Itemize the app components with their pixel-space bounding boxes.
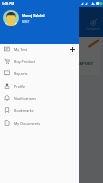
button[interactable]: Add test bbox=[69, 46, 76, 53]
button[interactable]: Profile bbox=[0, 80, 79, 92]
staticText: Reports bbox=[14, 71, 28, 76]
button[interactable]: Notifications bbox=[0, 92, 79, 104]
staticText: Manoj Kakdal bbox=[22, 13, 45, 17]
staticText: Bookmarks bbox=[14, 108, 34, 113]
staticText: Notifications bbox=[14, 96, 36, 101]
staticText: NEET bbox=[22, 20, 30, 24]
staticText: My Test bbox=[14, 47, 28, 52]
staticText: 5:05 PM bbox=[2, 2, 15, 6]
button[interactable]: My Documents bbox=[0, 117, 79, 129]
staticText: REPORT bbox=[77, 61, 94, 67]
staticText: Buy Product bbox=[14, 59, 36, 64]
button[interactable]: REPORT bbox=[3, 38, 100, 75]
button[interactable]: Reports bbox=[0, 67, 79, 79]
staticText: Completed bbox=[86, 27, 100, 31]
button[interactable]: Buy Product bbox=[0, 55, 79, 67]
staticText: Profile bbox=[14, 84, 26, 89]
staticText: My Documents bbox=[14, 121, 41, 126]
button[interactable]: Bookmarks bbox=[0, 104, 79, 116]
button[interactable]: My Test bbox=[0, 43, 79, 55]
